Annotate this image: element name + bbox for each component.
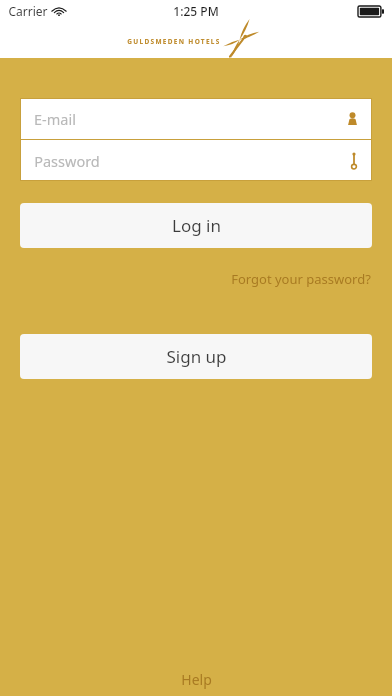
- staticText: Help: [181, 670, 212, 689]
- button[interactable]: Log in: [20, 203, 372, 248]
- staticText: Log in: [172, 214, 221, 237]
- staticText: Sign up: [166, 345, 227, 368]
- staticText: Forgot your password?: [231, 270, 371, 288]
- staticText: 1:25 PM: [173, 3, 219, 19]
- button[interactable]: Sign up: [20, 334, 372, 379]
- staticText: E-mail: [34, 109, 76, 129]
- staticText: GULDSMEDEN HOTELS: [127, 37, 221, 46]
- staticText: Password: [34, 151, 100, 171]
- button[interactable]: E-mail: [20, 98, 372, 139]
- button[interactable]: Forgot your password?: [229, 268, 373, 290]
- button[interactable]: Help: [171, 667, 222, 692]
- button[interactable]: Password: [20, 140, 372, 181]
- staticText: Carrier: [8, 3, 48, 19]
